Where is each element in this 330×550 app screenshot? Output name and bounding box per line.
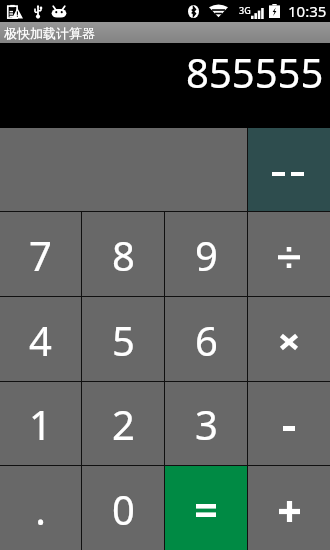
- staticText: 10:35: [288, 1, 327, 21]
- button[interactable]: 8: [82, 212, 164, 296]
- button[interactable]: 4: [0, 297, 81, 381]
- button[interactable]: 3: [165, 382, 247, 465]
- staticText: 7: [29, 228, 52, 282]
- button[interactable]: 1: [0, 382, 81, 465]
- staticText: 3: [195, 397, 218, 451]
- staticText: 1: [29, 397, 52, 451]
- staticText: 6: [195, 313, 218, 367]
- button[interactable]: 9: [165, 212, 247, 296]
- staticText: 8: [112, 228, 135, 282]
- staticText: 0: [112, 482, 135, 536]
- button[interactable]: Subtract: [248, 382, 330, 465]
- button[interactable]: 2: [82, 382, 164, 465]
- staticText: 3G: [239, 4, 251, 16]
- button[interactable]: Divide: [248, 212, 330, 296]
- button[interactable]: 6: [165, 297, 247, 381]
- button[interactable]: Equals: [165, 466, 247, 550]
- staticText: 5: [112, 313, 135, 367]
- button[interactable]: Add: [248, 466, 330, 550]
- staticText: 极快加载计算器: [4, 25, 95, 41]
- staticText: 855555: [186, 45, 324, 99]
- button[interactable]: 7: [0, 212, 81, 296]
- button[interactable]: Delete: [248, 128, 330, 211]
- button[interactable]: 5: [82, 297, 164, 381]
- staticText: .: [35, 482, 46, 536]
- staticText: 4: [29, 313, 52, 367]
- button[interactable]: Multiply: [248, 297, 330, 381]
- staticText: 9: [195, 228, 218, 282]
- staticText: 2: [112, 397, 135, 451]
- button[interactable]: .: [0, 466, 81, 550]
- button[interactable]: 0: [82, 466, 164, 550]
